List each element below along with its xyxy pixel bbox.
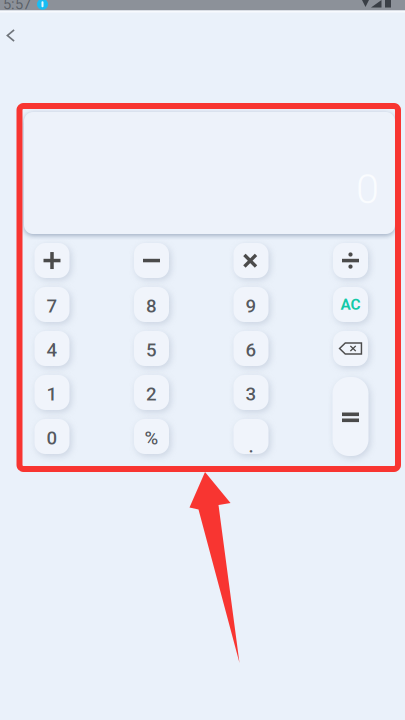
button[interactable]: Backspace [333, 331, 368, 366]
button[interactable]: . [233, 419, 268, 454]
staticText: 4 [46, 339, 57, 361]
staticText: 3 [245, 383, 256, 405]
staticText: 5 [146, 339, 157, 361]
staticText: 5:57 [3, 0, 31, 13]
button[interactable]: 1 [34, 375, 69, 410]
button[interactable]: Divide [333, 243, 368, 278]
staticText: 7 [46, 295, 57, 317]
button[interactable]: Plus [34, 243, 69, 278]
button[interactable]: Back [0, 12, 31, 54]
button[interactable]: 9 [233, 287, 268, 322]
button[interactable]: 8 [134, 287, 169, 322]
button[interactable]: 7 [34, 287, 69, 322]
button[interactable]: AC [333, 287, 368, 322]
button[interactable]: Minus [134, 243, 169, 278]
staticText: AC [340, 295, 360, 313]
button[interactable]: 2 [134, 375, 169, 410]
button[interactable]: Equals [332, 377, 368, 456]
button[interactable]: % [134, 419, 169, 454]
button[interactable]: 6 [233, 331, 268, 366]
staticText: 2 [146, 383, 157, 405]
staticText: 9 [245, 295, 256, 317]
staticText: . [248, 435, 253, 457]
button[interactable]: 0 [34, 419, 69, 454]
button[interactable]: 3 [233, 375, 268, 410]
button[interactable]: 5 [134, 331, 169, 366]
staticText: % [144, 427, 158, 449]
staticText: 0 [46, 427, 57, 449]
staticText: 1 [46, 383, 57, 405]
staticText: 6 [245, 339, 256, 361]
staticText: 0 [356, 165, 379, 213]
button[interactable]: 4 [34, 331, 69, 366]
staticText: 8 [146, 295, 157, 317]
button[interactable]: Multiply [233, 243, 268, 278]
